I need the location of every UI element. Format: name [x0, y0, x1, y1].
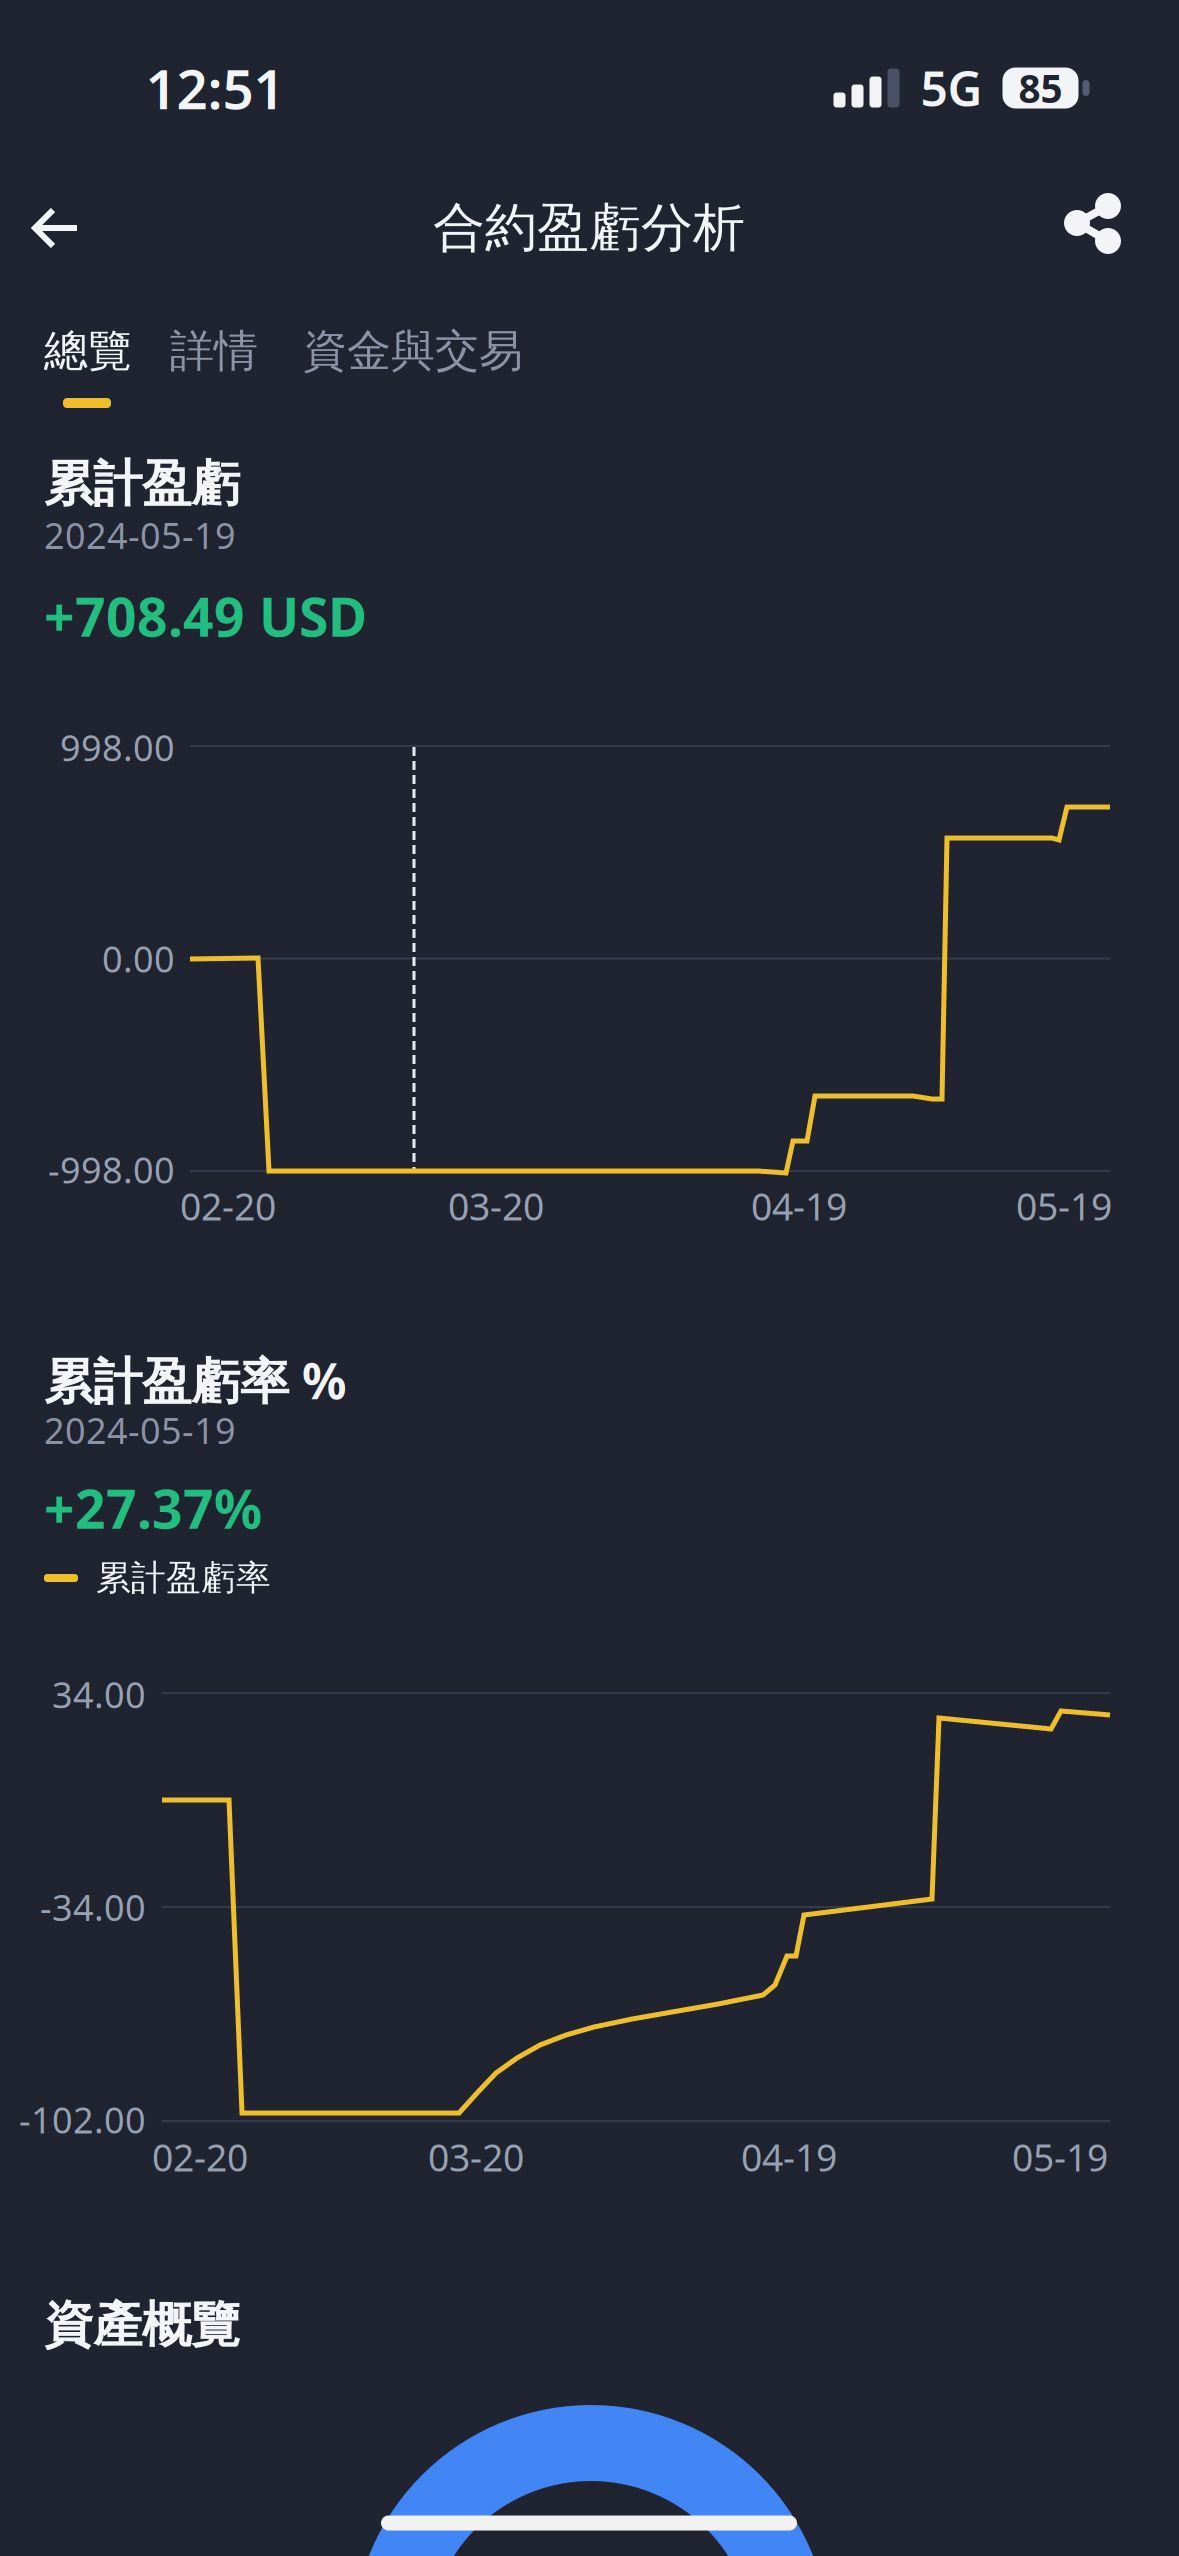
staticText: 05-19: [1012, 2132, 1108, 2182]
staticText: 05-19: [1016, 1181, 1112, 1231]
button[interactable]: 詳情: [170, 324, 258, 378]
staticText: 85: [1018, 62, 1062, 114]
staticText: 12:51: [145, 52, 284, 124]
staticText: 2024-05-19: [44, 511, 236, 559]
staticText: 02-20: [180, 1181, 276, 1231]
staticText: -102.00: [19, 2096, 146, 2143]
staticText: 累計盈虧率 %: [44, 1347, 346, 1413]
staticText: 總覽: [44, 324, 132, 378]
staticText: 03-20: [428, 2132, 524, 2182]
staticText: 04-19: [751, 1181, 847, 1231]
staticText: 04-19: [741, 2132, 837, 2182]
staticText: 998.00: [60, 723, 175, 771]
staticText: 累計盈虧率: [96, 1557, 271, 1599]
staticText: +27.37%: [44, 1473, 262, 1543]
staticText: -998.00: [48, 1146, 175, 1193]
staticText: 0.00: [102, 935, 175, 982]
staticText: 2024-05-19: [44, 1406, 236, 1454]
staticText: 資產概覽: [44, 2295, 240, 2355]
staticText: 資金與交易: [303, 324, 523, 378]
button[interactable]: 資金與交易: [303, 324, 523, 378]
staticText: 02-20: [152, 2132, 248, 2182]
staticText: 5G: [920, 56, 982, 120]
staticText: 合約盈虧分析: [433, 196, 745, 260]
staticText: 累計盈虧: [44, 454, 240, 514]
staticText: 詳情: [170, 324, 258, 378]
button[interactable]: 總覽: [44, 324, 132, 378]
button[interactable]: Back: [9, 185, 103, 271]
button[interactable]: Share: [1042, 171, 1144, 277]
staticText: 34.00: [52, 1670, 146, 1718]
staticText: -34.00: [40, 1883, 146, 1931]
staticText: 03-20: [448, 1181, 544, 1231]
staticText: +708.49 USD: [44, 581, 367, 651]
